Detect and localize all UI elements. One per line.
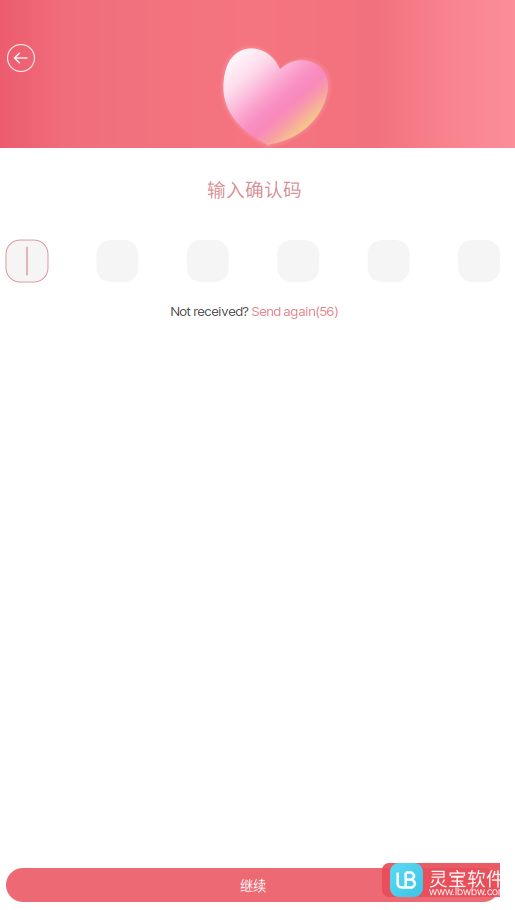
staticText: www.lbwbw.com <box>429 885 507 898</box>
staticText: Not received? <box>170 303 251 319</box>
button[interactable]: Back <box>0 36 43 80</box>
staticText: 灵宝软件 <box>429 864 505 891</box>
staticText: 输入确认码 <box>207 175 302 202</box>
button[interactable]: Send again(56) <box>251 303 338 319</box>
button[interactable]: 继续 <box>6 868 500 902</box>
staticText: Send again(56) <box>251 303 338 319</box>
staticText: 继续 <box>240 875 266 895</box>
